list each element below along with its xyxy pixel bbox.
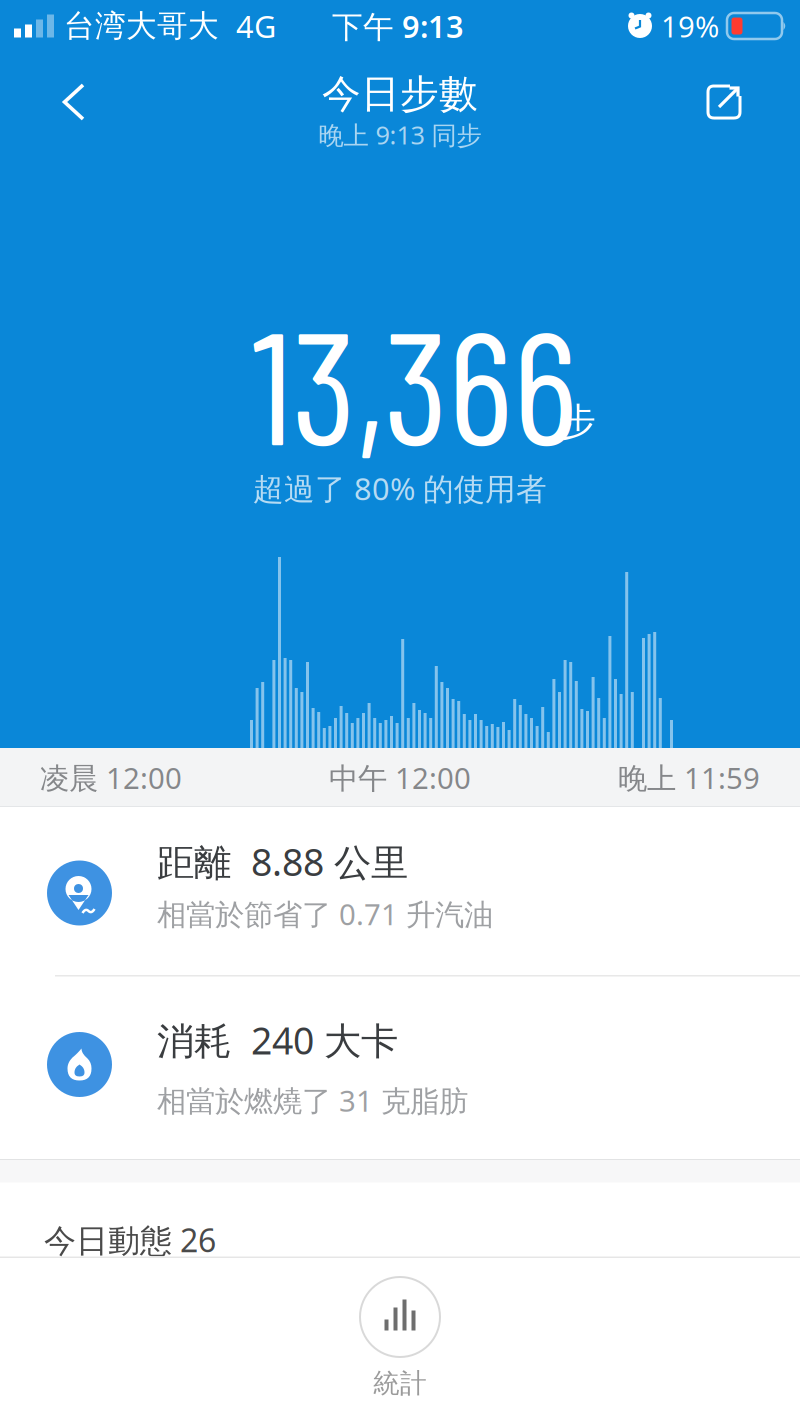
staticText: 統計 [373,1367,427,1400]
button[interactable]: 距離 8.88 公里 [0,843,800,939]
staticText: 晚上 9:13 同步 [318,118,481,151]
staticText: 台湾大哥大 [64,7,219,45]
staticText: 步 [558,399,595,445]
button[interactable]: 消耗 240 大卡 [0,1010,800,1115]
staticText: 晚上 11:59 [618,758,760,797]
staticText: 相當於節省了 0.71 升汽油 [157,894,493,933]
staticText: 4G [236,6,276,46]
staticText: 消耗 240 大卡 [157,1015,398,1065]
staticText: 今日步數 [322,70,478,118]
staticText: 凌晨 12:00 [40,758,182,797]
staticText: 中午 12:00 [329,758,471,797]
staticText: 超過了 80% 的使用者 [253,468,547,509]
button[interactable] [0,83,85,120]
staticText: 距離 8.88 公里 [157,837,408,886]
staticText: 19% [661,6,719,45]
button[interactable]: 統計 [360,1277,440,1400]
staticText: 相當於燃燒了 31 克脂肪 [157,1081,468,1120]
staticText: 今日動態 26 [44,1218,216,1261]
staticText: 下午 9:13 [332,6,464,46]
button[interactable] [706,84,800,120]
staticText: 13,366 [252,288,578,477]
